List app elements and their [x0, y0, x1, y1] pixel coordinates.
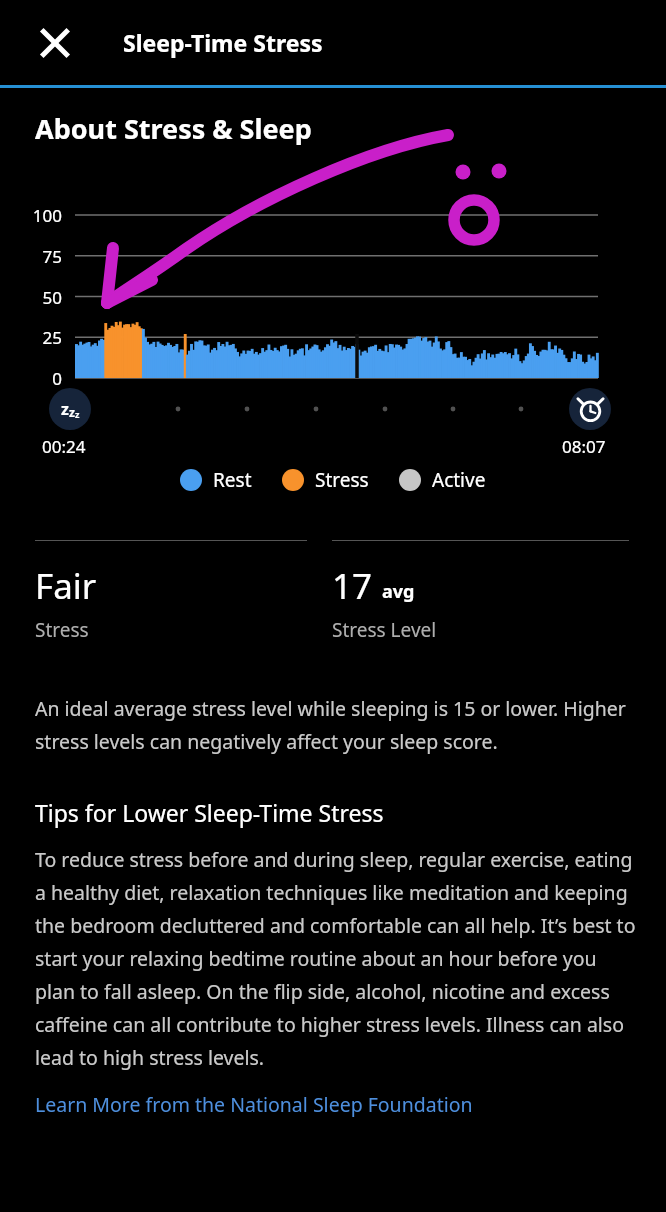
staticText: Stress	[35, 617, 89, 643]
staticText: About Stress & Sleep	[35, 110, 312, 147]
staticText: Learn More from the National Sleep Found…	[35, 1091, 473, 1118]
staticText: 0	[0, 367, 62, 390]
staticText: To reduce stress before and during sleep…	[35, 846, 640, 1071]
staticText: z	[69, 404, 75, 420]
staticText: Stress	[315, 467, 369, 493]
staticText: z	[61, 398, 69, 420]
staticText: Active	[432, 467, 486, 493]
staticText: Sleep-Time Stress	[123, 27, 323, 58]
staticText: Stress Level	[332, 617, 437, 643]
staticText: 25	[0, 326, 62, 349]
staticText: z	[75, 408, 80, 420]
button[interactable]: Active	[399, 467, 486, 493]
button[interactable]: Wake time	[569, 388, 611, 430]
staticText: 50	[0, 286, 62, 309]
staticText: 75	[0, 245, 62, 268]
staticText: 17	[332, 562, 373, 610]
staticText: An ideal average stress level while slee…	[35, 695, 634, 755]
staticText: Rest	[213, 467, 252, 493]
staticText: avg	[382, 579, 415, 604]
staticText: Tips for Lower Sleep-Time Stress	[35, 797, 384, 828]
button[interactable]: Learn More from the National Sleep Found…	[35, 1091, 473, 1118]
staticText: 08:07	[562, 435, 606, 458]
staticText: 100	[0, 204, 62, 227]
button[interactable]: Rest	[180, 467, 252, 493]
button[interactable]: Close	[30, 18, 80, 68]
button[interactable]: Sleep start	[49, 388, 91, 430]
button[interactable]: Stress	[282, 467, 369, 493]
staticText: Fair	[35, 562, 97, 610]
staticText: 00:24	[42, 435, 86, 458]
